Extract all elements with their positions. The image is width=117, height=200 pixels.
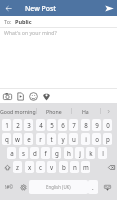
staticText: .	[92, 183, 94, 191]
staticText: 6	[61, 121, 65, 129]
button[interactable]: Back	[0, 0, 16, 16]
staticText: i	[85, 135, 87, 143]
button[interactable]: j	[75, 147, 84, 159]
staticText: k	[89, 149, 93, 157]
button[interactable]: d	[30, 147, 39, 159]
staticText: b	[62, 163, 66, 171]
staticText: a	[10, 149, 14, 157]
staticText: 2	[16, 121, 20, 129]
button[interactable]: Location	[40, 90, 53, 103]
button[interactable]: t	[47, 133, 56, 145]
staticText: v	[50, 163, 54, 171]
button[interactable]: 0	[103, 119, 112, 131]
button[interactable]: 8	[81, 119, 90, 131]
staticText: q	[5, 135, 9, 143]
staticText: English (UK)	[46, 184, 71, 190]
staticText: z	[16, 163, 19, 171]
staticText: 3	[27, 121, 31, 129]
staticText: 0	[106, 121, 110, 129]
staticText: j	[79, 149, 81, 157]
button[interactable]: 5	[47, 119, 56, 131]
button[interactable]: Phone	[36, 103, 71, 119]
staticText: 8	[84, 121, 88, 129]
button[interactable]: Shift	[1, 161, 13, 173]
staticText: !#©	[5, 184, 14, 190]
staticText: 1	[5, 121, 9, 129]
staticText: t	[50, 135, 53, 143]
button[interactable]: 3	[24, 119, 33, 131]
button[interactable]: 1	[2, 119, 11, 131]
staticText: u	[72, 135, 76, 143]
button[interactable]: More suggestions	[100, 103, 117, 119]
staticText: Ha	[82, 108, 89, 115]
staticText: f	[44, 149, 47, 157]
button[interactable]: g	[52, 147, 61, 159]
button[interactable]: a	[7, 147, 16, 159]
button[interactable]: 2	[13, 119, 22, 131]
staticText: p	[106, 135, 110, 143]
button[interactable]: z	[13, 161, 22, 173]
button[interactable]: !#©	[2, 180, 17, 194]
button[interactable]: n	[70, 161, 79, 173]
button[interactable]: Send	[101, 0, 117, 16]
button[interactable]: Good morning	[0, 103, 36, 119]
staticText: 4	[39, 121, 43, 129]
staticText: 5	[50, 121, 54, 129]
button[interactable]: u	[69, 133, 78, 145]
button[interactable]: To:	[0, 16, 117, 27]
staticText: 9	[95, 121, 99, 129]
button[interactable]: 9	[92, 119, 101, 131]
button[interactable]: o	[92, 133, 101, 145]
button[interactable]: Backspace	[105, 161, 117, 173]
button[interactable]: p	[103, 133, 112, 145]
button[interactable]: Settings	[17, 180, 29, 194]
button[interactable]: .	[88, 180, 98, 194]
button[interactable]: 6	[58, 119, 67, 131]
button[interactable]: x	[25, 161, 34, 173]
staticText: New Post	[25, 4, 56, 13]
staticText: What's on your mind?	[4, 29, 57, 36]
button[interactable]: k	[86, 147, 95, 159]
button[interactable]: Emoji	[27, 90, 40, 103]
button[interactable]: q	[2, 133, 11, 145]
button[interactable]: f	[41, 147, 50, 159]
button[interactable]: s	[19, 147, 28, 159]
button[interactable]: b	[59, 161, 68, 173]
staticText: d	[33, 149, 37, 157]
staticText: g	[55, 149, 59, 157]
button[interactable]: m	[81, 161, 90, 173]
staticText: n	[73, 163, 77, 171]
button[interactable]: y	[58, 133, 67, 145]
button[interactable]: c	[36, 161, 45, 173]
button[interactable]: r	[36, 133, 45, 145]
staticText: Public	[15, 18, 32, 25]
button[interactable]: w	[13, 133, 22, 145]
button[interactable]: Ha	[71, 103, 100, 119]
button[interactable]: e	[24, 133, 33, 145]
button[interactable]: Hide keyboard	[99, 180, 116, 194]
button[interactable]: Photo	[14, 90, 27, 103]
button[interactable]: l	[98, 147, 107, 159]
button[interactable]: i	[81, 133, 90, 145]
staticText: y	[61, 135, 65, 143]
staticText: h	[67, 149, 71, 157]
staticText: Phone	[46, 108, 62, 115]
staticText: x	[28, 163, 32, 171]
button[interactable]: 4	[36, 119, 45, 131]
button[interactable]: 7	[69, 119, 78, 131]
button[interactable]: h	[64, 147, 73, 159]
staticText: 7	[72, 121, 76, 129]
staticText: m	[83, 163, 89, 171]
staticText: l	[102, 149, 104, 157]
staticText: To:	[4, 18, 12, 25]
staticText: o	[95, 135, 99, 143]
staticText: Good morning	[0, 108, 36, 115]
button[interactable]: English (UK)	[29, 180, 88, 194]
staticText: s	[22, 149, 25, 157]
button[interactable]: Camera	[1, 90, 14, 103]
staticText: r	[39, 135, 42, 143]
staticText: c	[39, 163, 42, 171]
staticText: w	[15, 135, 20, 143]
button[interactable]: v	[47, 161, 56, 173]
staticText: e	[27, 135, 31, 143]
